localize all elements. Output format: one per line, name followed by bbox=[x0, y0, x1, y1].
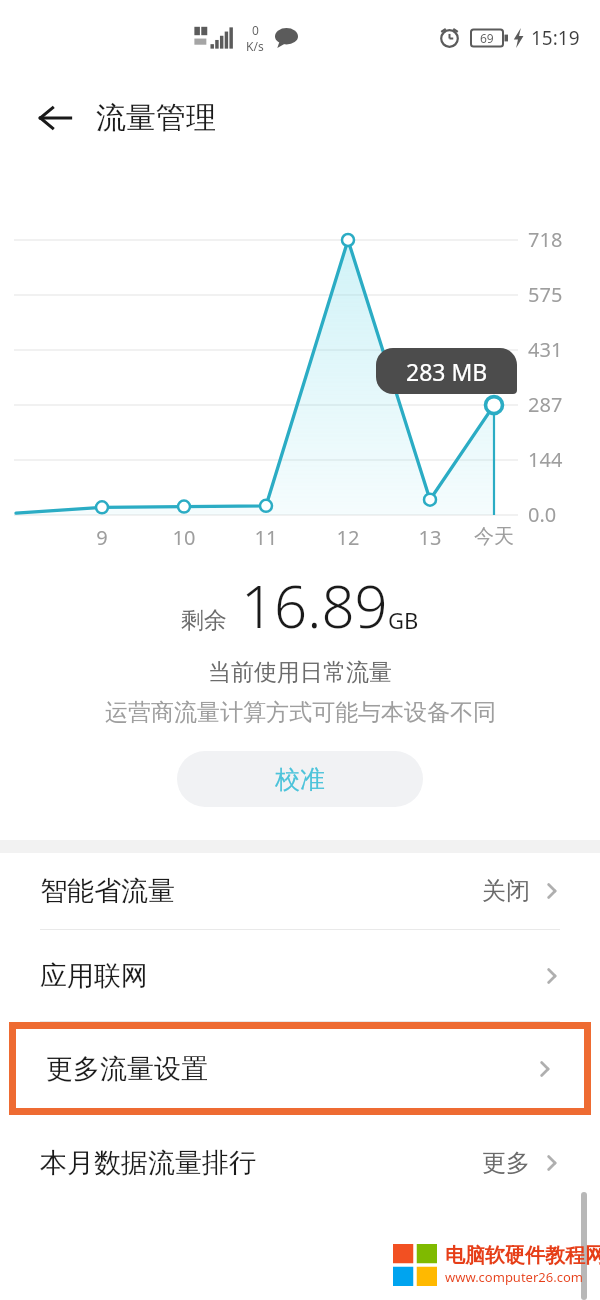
staticText: 剩余 bbox=[181, 606, 227, 635]
staticText: 电脑软硬件教程网 bbox=[445, 1243, 600, 1268]
button[interactable]: 应用联网 bbox=[0, 930, 600, 1021]
staticText: 13 bbox=[396, 524, 464, 551]
staticText: 69 bbox=[480, 30, 494, 46]
button[interactable]: 校准 bbox=[177, 751, 423, 807]
staticText: GB bbox=[388, 605, 419, 635]
staticText: 16.89 bbox=[241, 566, 388, 645]
staticText: 431 bbox=[528, 336, 563, 363]
staticText: K/s bbox=[246, 38, 264, 54]
staticText: 287 bbox=[528, 391, 563, 418]
staticText: 更多流量设置 bbox=[46, 1052, 208, 1086]
staticText: 今天 bbox=[460, 524, 528, 549]
staticText: 144 bbox=[528, 446, 563, 473]
staticText: 0 bbox=[252, 22, 259, 38]
button[interactable]: Back bbox=[28, 91, 82, 145]
staticText: 智能省流量 bbox=[40, 874, 175, 908]
staticText: 12 bbox=[314, 524, 382, 551]
staticText: 本月数据流量排行 bbox=[40, 1146, 256, 1180]
staticText: 575 bbox=[528, 281, 563, 308]
staticText: 0.0 bbox=[528, 501, 557, 528]
staticText: www.computer26.com bbox=[445, 1268, 583, 1286]
staticText: 校准 bbox=[275, 764, 325, 795]
staticText: 9 bbox=[68, 524, 136, 551]
staticText: 10 bbox=[150, 524, 218, 551]
staticText: 关闭 bbox=[482, 876, 530, 906]
staticText: 应用联网 bbox=[40, 959, 148, 993]
staticText: 当前使用日常流量 bbox=[208, 658, 392, 687]
staticText: 11 bbox=[232, 524, 300, 551]
button[interactable]: 智能省流量 bbox=[0, 853, 600, 929]
button[interactable]: 更多流量设置 bbox=[16, 1029, 584, 1108]
staticText: 更多 bbox=[482, 1148, 530, 1178]
staticText: 15:19 bbox=[531, 25, 580, 51]
button[interactable]: 本月数据流量排行 bbox=[0, 1115, 600, 1211]
staticText: 283 MB bbox=[406, 356, 488, 387]
staticText: 718 bbox=[528, 226, 563, 253]
staticText: 流量管理 bbox=[96, 99, 216, 137]
staticText: 运营商流量计算方式可能与本设备不同 bbox=[105, 698, 496, 727]
